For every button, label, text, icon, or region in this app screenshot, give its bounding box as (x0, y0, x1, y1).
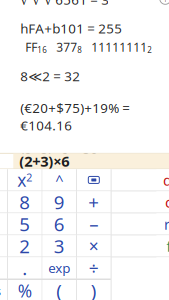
staticText: FF (25, 39, 37, 55)
button[interactable]: clr (156, 191, 169, 213)
staticText: ret (164, 214, 169, 234)
staticText: ÷ (89, 256, 99, 279)
staticText: × (89, 234, 99, 257)
button[interactable]: 9 (42, 191, 76, 213)
button[interactable]: √ (0, 169, 7, 191)
staticText: 377 (47, 39, 77, 55)
button[interactable]: Backspace (77, 169, 111, 191)
staticText: – (89, 212, 98, 236)
staticText: √ √ √ 6561 = 3 (20, 0, 109, 8)
button[interactable]: 7 (0, 191, 7, 213)
button[interactable]: 0 (0, 257, 7, 279)
button[interactable]: ÷ (77, 257, 111, 279)
staticText: . (22, 256, 27, 280)
button[interactable]: 1 (0, 235, 7, 257)
staticText: + (88, 190, 99, 214)
staticText: x (17, 168, 26, 191)
staticText: clr (165, 192, 169, 212)
button[interactable]: ) (77, 280, 111, 300)
staticText: ) (91, 278, 97, 300)
staticText: 8≪2 = 32 (20, 67, 80, 85)
staticText: 6 (54, 212, 65, 236)
button[interactable]: % (8, 280, 42, 300)
staticText: ^ (55, 170, 63, 190)
staticText: del (163, 170, 169, 190)
staticText: 2 (147, 44, 152, 55)
button[interactable]: × (77, 235, 111, 257)
staticText: 8 (77, 44, 82, 55)
staticText: 2 (26, 170, 32, 185)
button[interactable]: fn (156, 235, 169, 257)
staticText: (2+3)×6 = 30 (20, 148, 98, 166)
staticText: 9 (54, 190, 65, 214)
button[interactable]: 2 (8, 235, 42, 257)
staticText: (€20+$75)+19% = €104.16 (20, 99, 130, 134)
button[interactable]: . (8, 257, 42, 279)
staticText: 2 (19, 234, 30, 258)
staticText: 11111111 (82, 39, 147, 55)
staticText: exp (48, 259, 70, 277)
button[interactable]: del (156, 169, 169, 191)
staticText: ans (0, 282, 1, 299)
button[interactable]: ^ (42, 169, 76, 191)
staticText: ( (56, 278, 62, 300)
button[interactable]: 5 (8, 213, 42, 235)
button[interactable]: x (8, 169, 42, 191)
button[interactable]: 6 (42, 213, 76, 235)
staticText: hFA+b101 = 255 (20, 19, 122, 37)
button[interactable]: 4 (0, 213, 7, 235)
button[interactable]: ret (156, 213, 169, 235)
button[interactable]: – (77, 213, 111, 235)
staticText: 16 (37, 44, 47, 55)
staticText: (2+3)×6 (19, 151, 69, 171)
staticText: % (18, 279, 32, 300)
button[interactable]: ans (0, 280, 7, 300)
button[interactable]: + (77, 191, 111, 213)
staticText: 8 (19, 190, 30, 214)
staticText: 5 (19, 212, 30, 236)
button[interactable]: exp (42, 257, 76, 279)
staticText: fn (166, 236, 169, 256)
staticText: 3 (54, 234, 65, 258)
button[interactable]: 3 (42, 235, 76, 257)
staticText: i (164, 0, 166, 5)
button[interactable]: ( (42, 280, 76, 300)
button[interactable]: Info (155, 0, 169, 7)
button[interactable]: 8 (8, 191, 42, 213)
